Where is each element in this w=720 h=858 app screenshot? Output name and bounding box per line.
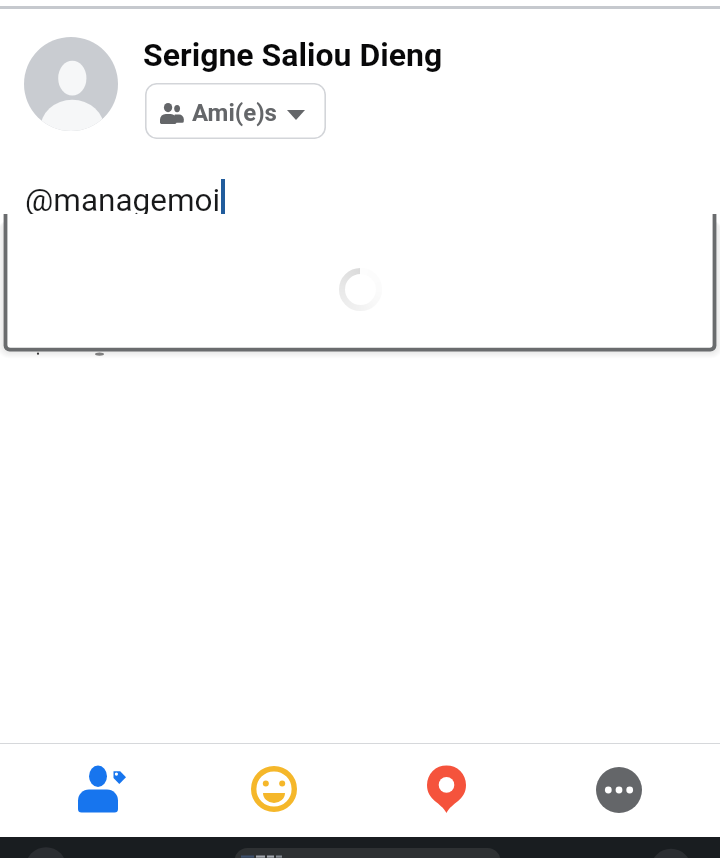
staticText: Serigne Saliou Dieng [143, 36, 443, 74]
staticText: @managemoi [25, 182, 221, 219]
staticText: Ami(e)s [192, 99, 277, 127]
button[interactable]: Ami(e)s [145, 83, 326, 139]
button[interactable]: Check in [359, 744, 533, 837]
button[interactable]: Tag people [11, 744, 185, 837]
button[interactable]: More options [533, 744, 705, 837]
button[interactable]: Feeling or activity [185, 744, 359, 837]
button[interactable]: Profile photo [24, 37, 118, 131]
